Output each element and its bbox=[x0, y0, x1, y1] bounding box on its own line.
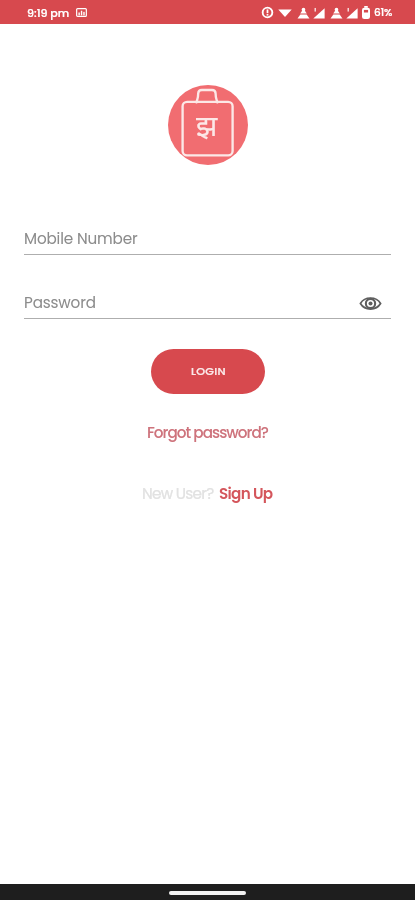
staticText: 9:19 pm bbox=[27, 5, 70, 20]
staticText: LOGIN bbox=[191, 363, 226, 379]
staticText: Password bbox=[24, 292, 96, 313]
staticText: Forgot password? bbox=[147, 422, 269, 443]
button[interactable]: LOGIN bbox=[151, 349, 265, 394]
button[interactable]: Sign Up bbox=[219, 483, 273, 504]
staticText: Mobile Number bbox=[24, 228, 138, 249]
button[interactable]: Forgot password? bbox=[141, 419, 275, 446]
staticText: 61% bbox=[374, 5, 393, 20]
button[interactable]: Show password bbox=[357, 290, 383, 316]
staticText: Sign Up bbox=[219, 483, 273, 504]
staticText: झ bbox=[196, 106, 218, 144]
staticText: New User? bbox=[142, 483, 214, 504]
